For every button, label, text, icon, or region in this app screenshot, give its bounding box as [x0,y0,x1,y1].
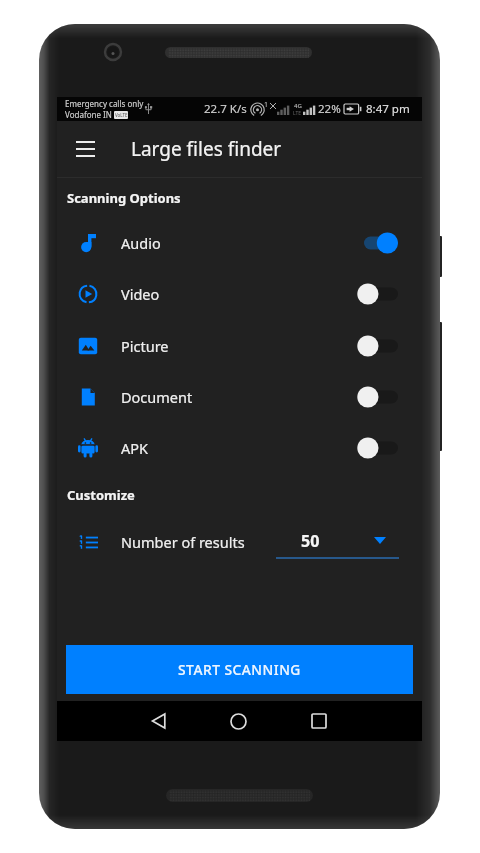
staticText: 22.7 K/s [204,101,247,117]
staticText: 1 [264,100,269,110]
staticText: Video [121,284,160,304]
button[interactable]: 50 [276,522,399,562]
staticText: Vodafone IN [65,109,112,120]
staticText: START SCANNING [178,660,301,679]
staticText: Customize [67,486,135,504]
staticText: 4G [294,102,302,110]
button[interactable]: Open navigation drawer [62,126,108,172]
staticText: Emergency calls only [65,98,144,109]
button[interactable]: Recent apps [299,701,339,741]
button[interactable]: Audio [57,217,422,268]
button[interactable]: Home [218,701,258,741]
staticText: 8:47 pm [366,101,410,117]
button[interactable]: APK [57,422,422,473]
button[interactable] [359,230,399,256]
staticText: VoLTE [115,112,128,118]
staticText: Scanning Options [67,189,181,207]
button[interactable] [359,281,399,307]
button[interactable]: Video [57,268,422,319]
staticText: Picture [121,336,169,356]
staticText: LTE [293,110,302,117]
button[interactable] [359,333,399,359]
staticText: Document [121,387,193,407]
staticText: Audio [121,233,161,253]
button[interactable]: START SCANNING [66,645,413,694]
staticText: APK [121,438,149,458]
staticText: 22% [318,101,341,117]
button[interactable] [359,435,399,461]
staticText: Large files finder [131,136,282,162]
button[interactable]: Document [57,371,422,422]
button[interactable] [359,384,399,410]
staticText: Number of results [121,532,245,552]
button[interactable]: Picture [57,320,422,371]
button[interactable]: Back [138,701,178,741]
staticText: 50 [301,530,320,552]
